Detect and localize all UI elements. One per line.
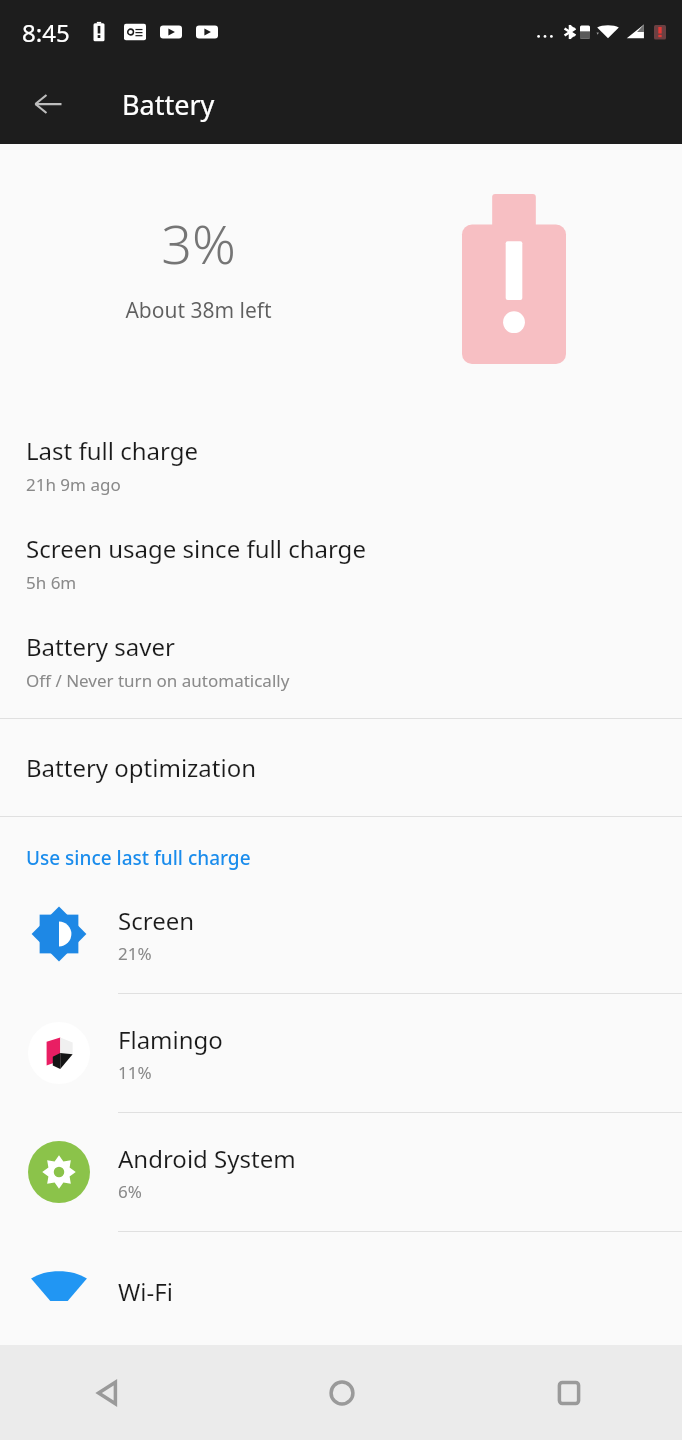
staticText: Flamingo xyxy=(118,1023,223,1056)
button[interactable]: Last full charge xyxy=(0,416,682,496)
staticText: Screen xyxy=(118,904,195,937)
staticText: About 38m left xyxy=(125,296,272,325)
staticText: Android System xyxy=(118,1142,296,1175)
staticText: Use since last full charge xyxy=(26,845,251,871)
staticText: 8:45 xyxy=(22,16,70,49)
staticText: 3% xyxy=(161,206,236,280)
staticText: 6% xyxy=(118,1180,142,1203)
staticText: 11% xyxy=(118,1061,152,1084)
button[interactable]: Battery saver xyxy=(0,594,682,692)
staticText: Off / Never turn on automatically xyxy=(26,669,290,692)
button[interactable]: Back xyxy=(0,1345,228,1440)
button[interactable]: Battery optimization xyxy=(0,719,682,816)
staticText: Last full charge xyxy=(26,434,198,467)
button[interactable]: Recent apps xyxy=(455,1345,682,1440)
button[interactable]: Android System xyxy=(0,1113,682,1231)
staticText: 21% xyxy=(118,942,152,965)
staticText: Screen usage since full charge xyxy=(26,532,366,565)
staticText: Wi-Fi xyxy=(118,1275,173,1308)
button[interactable]: Wi-Fi xyxy=(0,1232,682,1350)
staticText: 5h 6m xyxy=(26,571,77,594)
button[interactable]: Home xyxy=(228,1345,455,1440)
staticText: Battery saver xyxy=(26,630,175,663)
staticText: 21h 9m ago xyxy=(26,473,121,496)
button[interactable]: Back xyxy=(18,74,78,134)
button[interactable]: Screen usage since full charge xyxy=(0,496,682,594)
staticText: Battery optimization xyxy=(26,751,257,784)
button[interactable]: Flamingo xyxy=(0,994,682,1112)
staticText: Battery xyxy=(122,86,215,123)
button[interactable]: Screen xyxy=(0,875,682,993)
